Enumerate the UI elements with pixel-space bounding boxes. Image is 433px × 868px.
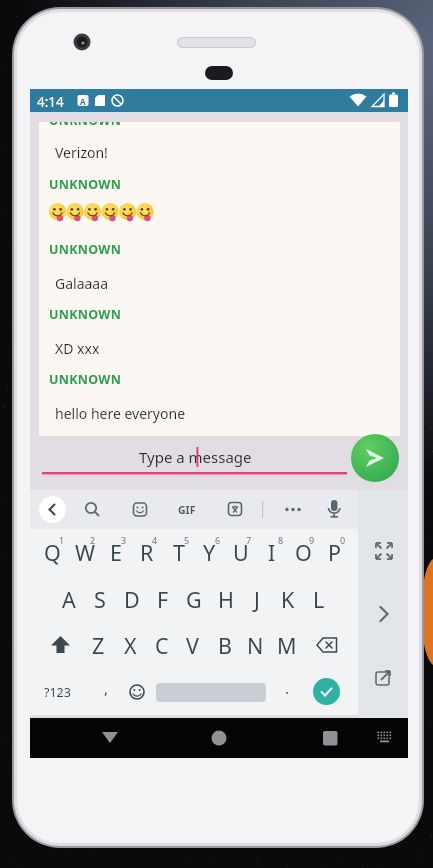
button[interactable]: U: [225, 529, 256, 575]
button[interactable]: Q: [37, 529, 68, 575]
button[interactable]: [370, 537, 398, 565]
staticText: Verizon!: [55, 143, 108, 162]
button[interactable]: [315, 719, 345, 757]
staticText: N: [247, 631, 264, 660]
button[interactable]: N: [240, 622, 271, 668]
staticText: ,: [104, 678, 109, 698]
staticText: E: [110, 538, 122, 567]
button[interactable]: D: [116, 576, 147, 622]
button[interactable]: M: [271, 622, 302, 668]
staticText: B: [218, 631, 232, 660]
button[interactable]: GIF: [167, 496, 207, 524]
staticText: hello here everyone: [55, 404, 186, 423]
staticText: M: [277, 631, 297, 660]
button[interactable]: P: [319, 529, 350, 575]
button[interactable]: F: [147, 576, 178, 622]
staticText: 5: [184, 534, 190, 546]
staticText: Z: [92, 631, 105, 660]
button[interactable]: .: [279, 678, 295, 698]
staticText: V: [186, 631, 199, 660]
button[interactable]: I: [256, 529, 287, 575]
button[interactable]: Z: [83, 622, 114, 668]
staticText: W: [75, 538, 95, 567]
staticText: XD xxx: [55, 339, 100, 358]
staticText: 4:14: [37, 93, 64, 111]
button[interactable]: [370, 600, 398, 628]
button[interactable]: L: [303, 576, 334, 622]
button[interactable]: [39, 496, 66, 523]
staticText: A: [80, 96, 86, 107]
button[interactable]: V: [177, 622, 208, 668]
button[interactable]: E: [100, 529, 131, 575]
button[interactable]: [96, 730, 124, 746]
button[interactable]: Type a message: [30, 436, 360, 490]
button[interactable]: J: [241, 576, 272, 622]
staticText: ?123: [44, 684, 71, 701]
button[interactable]: Y: [194, 529, 225, 575]
button[interactable]: [370, 663, 398, 691]
button[interactable]: [204, 719, 234, 757]
staticText: Y: [203, 538, 216, 567]
staticText: P: [328, 538, 342, 567]
staticText: UNKNOWN: [49, 241, 122, 258]
staticText: Type a message: [139, 447, 252, 467]
button[interactable]: [221, 496, 249, 524]
staticText: 2: [90, 534, 96, 546]
staticText: A: [62, 585, 76, 614]
staticText: L: [313, 585, 325, 614]
staticText: .: [285, 678, 290, 698]
button[interactable]: W: [69, 529, 100, 575]
staticText: 9: [309, 534, 315, 546]
button[interactable]: H: [210, 576, 241, 622]
button[interactable]: C: [146, 622, 177, 668]
button[interactable]: [308, 622, 348, 668]
staticText: UNKNOWN: [49, 122, 122, 129]
button[interactable]: [126, 496, 154, 524]
button[interactable]: R: [131, 529, 162, 575]
button[interactable]: [313, 678, 340, 705]
button[interactable]: B: [209, 622, 240, 668]
button[interactable]: [351, 434, 399, 482]
staticText: O: [295, 538, 312, 567]
staticText: J: [254, 585, 260, 614]
button[interactable]: ?123: [37, 669, 77, 715]
button[interactable]: S: [84, 576, 115, 622]
button[interactable]: [124, 668, 152, 714]
staticText: F: [157, 585, 169, 614]
staticText: 1: [59, 534, 65, 546]
staticText: G: [186, 585, 202, 614]
button[interactable]: A: [53, 576, 84, 622]
staticText: 8: [278, 534, 284, 546]
button[interactable]: K: [272, 576, 303, 622]
button[interactable]: O: [288, 529, 319, 575]
staticText: H: [218, 585, 234, 614]
button[interactable]: X: [115, 622, 146, 668]
staticText: I: [268, 538, 276, 567]
staticText: GIF: [178, 503, 196, 517]
staticText: Q: [44, 538, 61, 567]
staticText: 7: [246, 534, 252, 546]
button[interactable]: T: [163, 529, 194, 575]
staticText: Galaaaa: [55, 274, 109, 293]
staticText: T: [173, 538, 185, 567]
staticText: R: [140, 538, 154, 567]
staticText: D: [124, 585, 140, 614]
button[interactable]: G: [178, 576, 209, 622]
staticText: 4: [152, 534, 158, 546]
button[interactable]: [320, 496, 348, 524]
staticText: 3: [121, 534, 127, 546]
button[interactable]: [77, 496, 105, 524]
staticText: U: [233, 538, 249, 567]
staticText: S: [94, 585, 106, 614]
staticText: UNKNOWN: [49, 306, 122, 323]
button[interactable]: [370, 719, 400, 757]
staticText: UNKNOWN: [49, 176, 122, 193]
staticText: 6: [215, 534, 221, 546]
staticText: UNKNOWN: [49, 371, 122, 388]
staticText: C: [155, 631, 169, 660]
staticText: K: [281, 585, 295, 614]
button[interactable]: ,: [98, 678, 114, 698]
button[interactable]: [279, 496, 307, 524]
button[interactable]: [44, 622, 82, 668]
